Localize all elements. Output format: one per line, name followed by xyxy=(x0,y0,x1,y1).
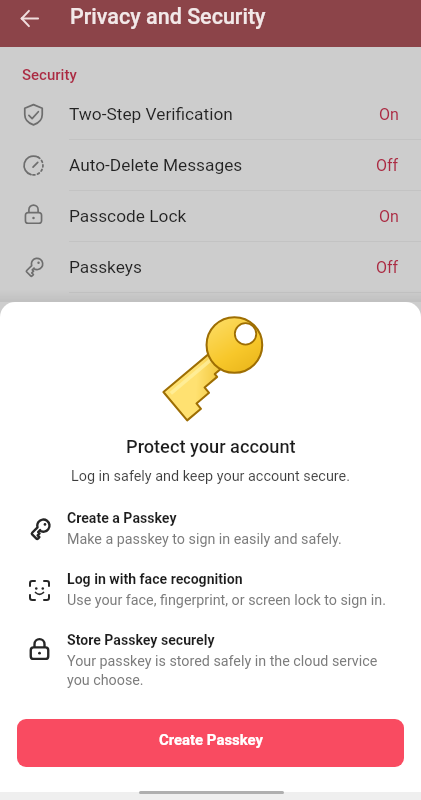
staticText: Your passkey is stored safely in the clo… xyxy=(67,653,399,689)
button[interactable]: Passkeys xyxy=(0,242,421,293)
staticText: Passkeys xyxy=(69,257,142,277)
staticText: Two-Step Verification xyxy=(69,104,233,124)
staticText: Create a Passkey xyxy=(67,510,177,527)
staticText: Log in safely and keep your account secu… xyxy=(71,468,350,485)
staticText: On xyxy=(379,105,399,124)
staticText: On xyxy=(379,207,399,226)
button[interactable]: Two-Step Verification xyxy=(0,89,421,140)
staticText: Log in with face recognition xyxy=(67,571,243,588)
staticText: Store Passkey securely xyxy=(67,632,215,649)
button[interactable]: Log in with face recognition xyxy=(0,571,421,609)
staticText: Protect your account xyxy=(126,436,296,457)
staticText: Make a passkey to sign in easily and saf… xyxy=(67,531,342,548)
button[interactable]: Create a Passkey xyxy=(0,510,421,548)
staticText: Security xyxy=(22,66,77,84)
staticText: Off xyxy=(376,258,399,277)
staticText: Auto-Delete Messages xyxy=(69,155,243,175)
staticText: Use your face, fingerprint, or screen lo… xyxy=(67,592,386,609)
button[interactable]: Passcode Lock xyxy=(0,191,421,242)
staticText: Passcode Lock xyxy=(69,206,187,226)
button[interactable]: Back xyxy=(9,0,49,38)
staticText: Off xyxy=(376,156,399,175)
button[interactable]: Auto-Delete Messages xyxy=(0,140,421,191)
button[interactable]: Create Passkey xyxy=(17,719,404,767)
staticText: Create Passkey xyxy=(159,731,263,748)
button[interactable]: Store Passkey securely xyxy=(0,632,421,689)
staticText: Privacy and Security xyxy=(70,4,266,29)
